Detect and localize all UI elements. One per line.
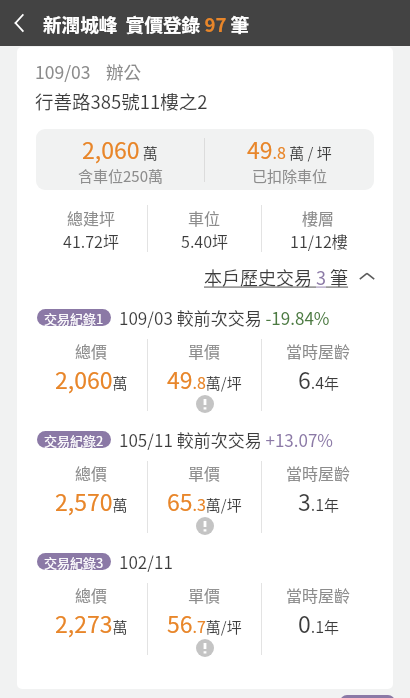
staticText: 樓層 [302, 206, 335, 229]
staticText: 本戶歷史交易 3 筆 [204, 264, 349, 290]
staticText: 41.72坪 [63, 229, 119, 252]
staticText: 行善路385號11樓之2 [35, 88, 208, 115]
staticText: 已扣除車位 [252, 165, 328, 187]
staticText: 當時屋齡 [286, 461, 351, 484]
staticText: 49.8 萬 / 坪 [247, 132, 332, 165]
staticText: 交易紀錄1 [44, 309, 104, 326]
staticText: 5.40坪 [181, 229, 229, 252]
staticText: 6.4年 [298, 362, 340, 395]
staticText: 當時屋齡 [286, 339, 351, 362]
staticText: 56.7萬/坪 [167, 606, 242, 639]
staticText: 2,060 萬 [82, 132, 158, 165]
staticText: 3.1年 [298, 484, 340, 517]
staticText: 單價 [188, 461, 221, 484]
staticText: 總價 [75, 339, 108, 362]
button[interactable]: 交易紀錄2 [17, 427, 393, 549]
staticText: 單價 [188, 583, 221, 606]
button[interactable]: Back [0, 0, 40, 46]
button[interactable]: 交易紀錄3 [17, 549, 393, 671]
staticText: 2,570萬 [55, 484, 128, 517]
button[interactable]: Info [196, 517, 214, 535]
staticText: 總價 [75, 461, 108, 484]
staticText: 單價 [188, 339, 221, 362]
staticText: 102/11 [119, 549, 173, 574]
staticText: 總價 [75, 583, 108, 606]
staticText: 含車位250萬 [78, 165, 163, 187]
staticText: 車位 [188, 206, 221, 229]
staticText: 109/03 辦公 [35, 59, 142, 84]
staticText: 65.3萬/坪 [167, 484, 242, 517]
staticText: 0.1年 [298, 606, 340, 639]
staticText: 2,060萬 [55, 362, 128, 395]
button[interactable]: 交易紀錄1 [17, 305, 393, 427]
staticText: 11/12樓 [290, 229, 348, 252]
button[interactable]: More [340, 695, 395, 698]
staticText: 2,273萬 [55, 606, 128, 639]
staticText: 新潤城峰 實價登錄 97 筆 [43, 10, 250, 37]
staticText: 總建坪 [67, 206, 116, 229]
staticText: 49.8萬/坪 [167, 362, 242, 395]
staticText: 交易紀錄3 [44, 553, 104, 570]
button[interactable]: Info [196, 395, 214, 413]
staticText: 交易紀錄2 [44, 431, 104, 448]
button[interactable]: Info [196, 639, 214, 657]
staticText: 105/11 較前次交易 +13.07% [119, 427, 334, 452]
staticText: 當時屋齡 [286, 583, 351, 606]
staticText: 109/03 較前次交易 -19.84% [119, 305, 330, 330]
button[interactable]: 本戶歷史交易 3 筆 [17, 264, 376, 290]
